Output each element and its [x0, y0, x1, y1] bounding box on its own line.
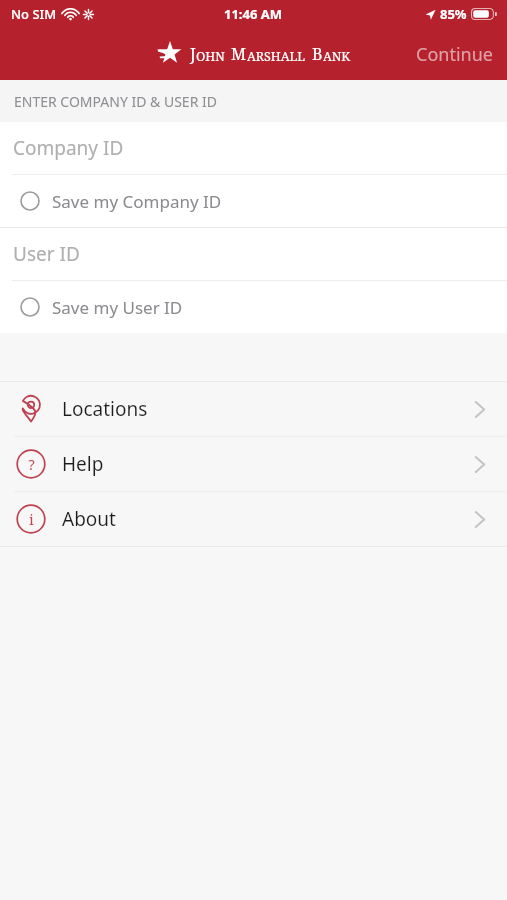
button[interactable]: Save my Company ID — [0, 175, 507, 227]
staticText: M — [231, 43, 247, 65]
button[interactable]: i — [0, 492, 507, 546]
staticText: 11:46 AM — [224, 5, 283, 23]
staticText: Save my User ID — [52, 296, 183, 319]
staticText: Help — [62, 451, 475, 477]
staticText: B — [312, 43, 323, 65]
staticText: ENTER COMPANY ID & USER ID — [14, 92, 217, 111]
button[interactable]: Company ID — [0, 122, 507, 174]
staticText: ? — [28, 454, 35, 474]
staticText: User ID — [13, 241, 80, 267]
staticText: Continue — [416, 42, 493, 67]
staticText: Save my Company ID — [52, 190, 222, 213]
staticText: ANK — [323, 48, 351, 65]
staticText: ARSHALL — [247, 48, 306, 65]
staticText: Company ID — [13, 135, 124, 161]
staticText: J — [190, 43, 196, 65]
staticText: i — [29, 509, 34, 529]
button[interactable]: Save my User ID — [0, 281, 507, 333]
button[interactable]: Continue — [402, 34, 507, 75]
staticText: OHN — [196, 48, 225, 65]
staticText: Locations — [62, 396, 475, 422]
staticText: About — [62, 506, 475, 532]
button[interactable]: Locations — [0, 382, 507, 436]
button[interactable]: ? — [0, 437, 507, 491]
staticText: No SIM — [11, 5, 57, 23]
staticText: 85% — [440, 5, 467, 23]
button[interactable]: User ID — [0, 228, 507, 280]
